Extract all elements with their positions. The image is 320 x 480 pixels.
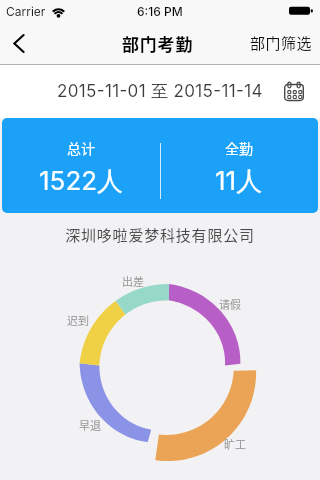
- staticText: 2015-11-01 至 2015-11-14: [57, 81, 263, 103]
- staticText: 6:16 PM: [137, 4, 183, 19]
- button[interactable]: 总计: [2, 118, 160, 213]
- staticText: 迟到: [67, 312, 89, 328]
- staticText: 11人: [215, 165, 263, 198]
- staticText: 旷工: [224, 436, 246, 452]
- staticText: 早退: [79, 417, 101, 433]
- button[interactable]: 全勤: [160, 118, 318, 213]
- button[interactable]: 部门筛选: [250, 32, 320, 54]
- staticText: 出差: [122, 273, 144, 289]
- staticText: 全勤: [225, 138, 253, 158]
- staticText: Carrier: [6, 4, 46, 19]
- staticText: 部门筛选: [250, 32, 313, 54]
- staticText: 深圳哆啦爱梦科技有限公司: [0, 224, 320, 246]
- staticText: 部门考勤: [122, 31, 194, 56]
- staticText: 1522人: [39, 165, 124, 198]
- button[interactable]: [0, 22, 40, 64]
- staticText: 总计: [67, 138, 95, 158]
- staticText: 请假: [219, 296, 241, 312]
- button[interactable]: 2015-11-01 至 2015-11-14: [0, 65, 320, 118]
